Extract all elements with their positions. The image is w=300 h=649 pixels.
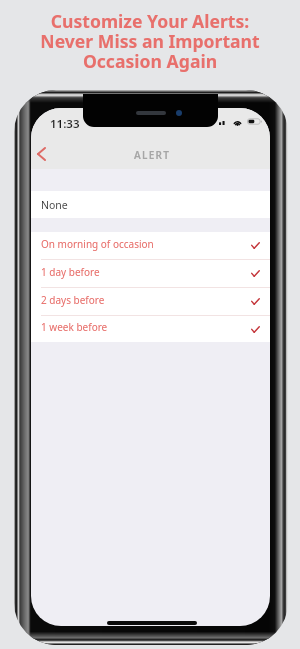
button[interactable]: Back	[31, 141, 54, 167]
staticText: On morning of occasion	[41, 237, 154, 251]
staticText: None	[41, 198, 68, 212]
button[interactable]: On morning of occasion	[31, 232, 270, 259]
button[interactable]: 2 days before	[31, 288, 270, 315]
button[interactable]: None	[31, 191, 270, 218]
staticText: Customize Your Alerts: Never Miss an Imp…	[40, 9, 260, 73]
staticText: 1 day before	[41, 265, 100, 279]
button[interactable]: 1 week before	[31, 316, 270, 342]
staticText: 1 week before	[41, 320, 108, 334]
staticText: 2 days before	[41, 293, 105, 307]
button[interactable]: 1 day before	[31, 260, 270, 287]
staticText: 11:33	[50, 116, 80, 132]
staticText: ALERT	[134, 148, 171, 162]
